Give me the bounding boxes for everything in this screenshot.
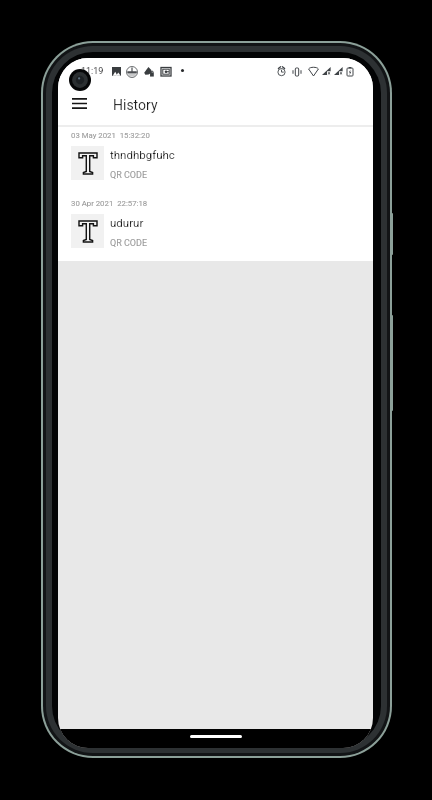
- staticText: History: [113, 97, 158, 113]
- staticText: 11:19: [81, 66, 104, 77]
- staticText: thndhbgfuhc: [110, 148, 175, 161]
- staticText: QR CODE: [110, 170, 148, 181]
- staticText: 03 May 2021 15:32:20: [71, 131, 150, 140]
- staticText: 30 Apr 2021 22:57:18: [71, 199, 148, 208]
- button[interactable]: 30 Apr 2021 22:57:18: [58, 193, 373, 261]
- button[interactable]: 03 May 2021 15:32:20: [58, 125, 373, 193]
- button[interactable]: Open navigation menu: [63, 87, 96, 120]
- staticText: udurur: [110, 216, 144, 229]
- staticText: QR CODE: [110, 238, 148, 249]
